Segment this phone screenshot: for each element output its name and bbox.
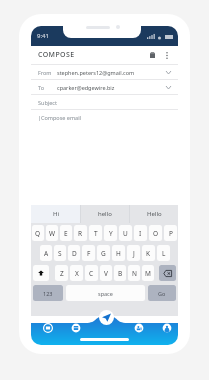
staticText: T xyxy=(94,229,98,238)
button[interactable]: T xyxy=(89,225,102,241)
button[interactable]: M xyxy=(142,265,154,281)
button[interactable]: Hi xyxy=(31,205,80,223)
staticText: X xyxy=(75,269,79,278)
button[interactable]: E xyxy=(60,225,72,241)
button[interactable]: Shift xyxy=(33,265,49,281)
staticText: Y xyxy=(109,229,113,238)
staticText: space xyxy=(98,290,113,297)
staticText: A xyxy=(44,249,49,258)
staticText: J xyxy=(133,249,135,258)
button[interactable]: Q xyxy=(32,225,44,241)
button[interactable]: Space xyxy=(66,285,145,301)
button[interactable]: O xyxy=(149,225,162,241)
button[interactable]: Go xyxy=(148,285,176,301)
staticText: O xyxy=(153,229,159,238)
button[interactable]: Hello xyxy=(130,205,178,223)
button[interactable]: Mail xyxy=(42,322,54,334)
button[interactable]: I xyxy=(134,225,147,241)
button[interactable]: R xyxy=(74,225,87,241)
staticText: stephen.peters12@gmail.com xyxy=(57,69,135,76)
button[interactable]: Y xyxy=(104,225,117,241)
button[interactable]: N xyxy=(128,265,140,281)
staticText: D xyxy=(72,249,77,258)
button[interactable]: H xyxy=(112,245,125,261)
button[interactable]: C xyxy=(85,265,98,281)
staticText: V xyxy=(104,269,108,278)
staticText: B xyxy=(118,269,123,278)
staticText: F xyxy=(87,249,91,258)
button[interactable]: Camera xyxy=(129,324,144,336)
staticText: Hi xyxy=(53,210,59,218)
button[interactable]: Backspace xyxy=(159,265,176,281)
button[interactable]: hello xyxy=(81,205,129,223)
button[interactable]: W xyxy=(46,225,58,241)
button[interactable]: P xyxy=(164,225,177,241)
staticText: Z xyxy=(60,269,64,278)
staticText: 123 xyxy=(43,290,53,297)
staticText: R xyxy=(78,229,83,238)
staticText: H xyxy=(116,249,121,258)
staticText: M xyxy=(145,269,151,278)
button[interactable]: Attach file xyxy=(159,324,174,336)
staticText: N xyxy=(132,269,137,278)
button[interactable]: Inbox xyxy=(70,322,82,334)
staticText: Subject xyxy=(38,99,57,106)
staticText: COMPOSE xyxy=(38,50,75,60)
button[interactable]: Profile xyxy=(161,322,173,334)
button[interactable]: U xyxy=(119,225,132,241)
staticText: E xyxy=(64,229,68,238)
staticText: K xyxy=(146,249,151,258)
staticText: C xyxy=(89,269,94,278)
staticText: 9:41 xyxy=(37,32,49,40)
button[interactable]: X xyxy=(70,265,83,281)
staticText: S xyxy=(58,249,62,258)
staticText: From xyxy=(38,69,52,76)
staticText: P xyxy=(169,229,173,238)
staticText: G xyxy=(101,249,106,258)
button[interactable]: Insert image xyxy=(144,324,159,336)
button[interactable]: J xyxy=(127,245,140,261)
staticText: Q xyxy=(35,229,41,238)
button[interactable]: A xyxy=(40,245,52,261)
button[interactable]: F xyxy=(82,245,95,261)
button[interactable]: More options xyxy=(162,50,172,60)
button[interactable]: Send xyxy=(99,310,114,325)
button[interactable]: Numbers xyxy=(33,285,63,301)
button[interactable]: B xyxy=(114,265,126,281)
button[interactable]: Z xyxy=(55,265,68,281)
staticText: hello xyxy=(98,210,112,218)
staticText: U xyxy=(123,229,128,238)
staticText: L xyxy=(162,249,166,258)
staticText: cparker@edgewire.biz xyxy=(57,84,115,91)
button[interactable]: G xyxy=(97,245,110,261)
staticText: I xyxy=(139,229,142,238)
button[interactable]: Delete xyxy=(147,50,157,60)
button[interactable]: D xyxy=(68,245,80,261)
button[interactable]: K xyxy=(142,245,155,261)
staticText: To xyxy=(38,84,45,91)
button[interactable]: V xyxy=(100,265,112,281)
staticText: |Compose email xyxy=(38,114,82,121)
staticText: Go xyxy=(158,290,166,297)
button[interactable]: Contacts xyxy=(133,322,145,334)
staticText: Hello xyxy=(147,210,162,218)
button[interactable]: S xyxy=(54,245,66,261)
button[interactable]: L xyxy=(157,245,170,261)
staticText: W xyxy=(49,229,56,238)
